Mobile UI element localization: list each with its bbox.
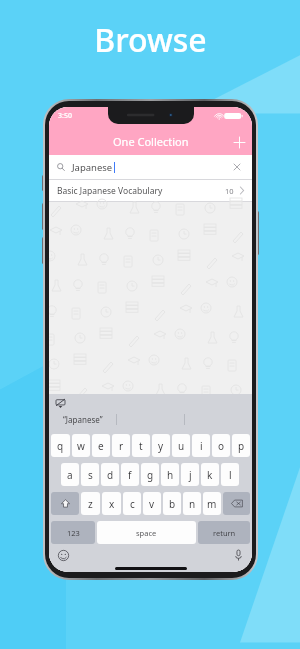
button[interactable]: Add (226, 129, 252, 155)
staticText: b (169, 497, 176, 511)
button[interactable]: o (212, 434, 230, 457)
staticText: k (207, 468, 213, 482)
button[interactable]: k (201, 463, 219, 486)
button[interactable]: p (232, 434, 250, 457)
button[interactable]: x (102, 492, 121, 515)
button[interactable]: n (183, 492, 201, 515)
staticText: “Japanese” (63, 414, 103, 425)
button[interactable]: u (172, 434, 190, 457)
button[interactable]: Hide keyboard (54, 397, 66, 409)
button[interactable]: q (51, 434, 70, 457)
staticText: 3:50 (58, 111, 72, 121)
staticText: q (57, 439, 64, 453)
button[interactable]: Clear search (230, 160, 244, 174)
button[interactable]: a (61, 463, 79, 486)
button[interactable]: return (198, 521, 250, 544)
button[interactable]: b (163, 492, 181, 515)
button[interactable]: l (221, 463, 239, 486)
staticText: 10 (225, 186, 234, 196)
staticText: n (189, 497, 196, 511)
button[interactable]: g (141, 463, 159, 486)
button[interactable]: Backspace (223, 492, 250, 515)
button[interactable]: Japanese (49, 155, 252, 179)
button[interactable]: h (161, 463, 179, 486)
button[interactable]: f (121, 463, 139, 486)
button[interactable]: j (181, 463, 199, 486)
staticText: d (107, 468, 114, 482)
button[interactable]: c (123, 492, 141, 515)
staticText: t (139, 439, 143, 453)
staticText: h (167, 468, 174, 482)
staticText: y (158, 439, 164, 453)
staticText: m (207, 497, 217, 511)
button[interactable]: Shift (51, 492, 79, 515)
staticText: Basic Japanese Vocabulary (57, 185, 163, 197)
button[interactable]: y (152, 434, 170, 457)
staticText: v (149, 497, 155, 511)
staticText: space (136, 528, 157, 538)
staticText: o (218, 439, 225, 453)
button[interactable]: v (143, 492, 161, 515)
button[interactable]: e (92, 434, 110, 457)
staticText: w (77, 439, 85, 453)
staticText: z (88, 497, 93, 511)
button[interactable]: s (81, 463, 99, 486)
staticText: Japanese (72, 161, 113, 174)
button[interactable]: i (192, 434, 210, 457)
staticText: g (147, 468, 154, 482)
button[interactable]: r (112, 434, 130, 457)
button[interactable]: d (101, 463, 119, 486)
staticText: l (229, 468, 232, 482)
staticText: 123 (67, 528, 80, 538)
staticText: s (88, 468, 93, 482)
button[interactable]: w (72, 434, 90, 457)
staticText: Browse (94, 18, 207, 62)
staticText: c (130, 497, 135, 511)
staticText: x (109, 497, 115, 511)
button[interactable]: Basic Japanese Vocabulary (49, 180, 252, 201)
staticText: i (200, 439, 203, 453)
button[interactable]: 123 (51, 521, 95, 544)
staticText: e (98, 439, 104, 453)
staticText: p (238, 439, 245, 453)
staticText: a (67, 468, 73, 482)
button[interactable]: “Japanese” (49, 410, 116, 429)
button[interactable]: t (132, 434, 150, 457)
staticText: u (178, 439, 185, 453)
staticText: return (213, 528, 236, 538)
button[interactable]: Dictation (230, 547, 246, 563)
button[interactable]: m (203, 492, 221, 515)
staticText: r (119, 439, 124, 453)
button[interactable]: z (81, 492, 100, 515)
button[interactable]: Emoji (55, 547, 71, 563)
staticText: j (189, 468, 192, 482)
staticText: f (128, 468, 132, 482)
staticText: One Collection (113, 134, 189, 149)
button[interactable]: space (97, 521, 196, 544)
